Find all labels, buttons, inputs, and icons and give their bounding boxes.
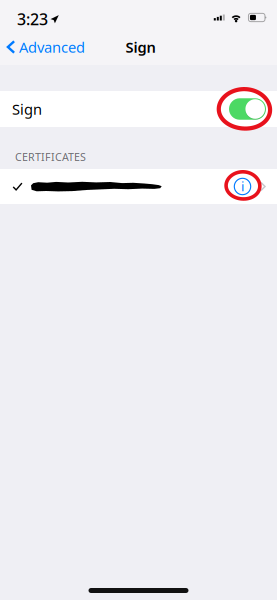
button[interactable]: More Info: [230, 169, 270, 204]
staticText: i: [241, 177, 244, 195]
staticText: 3:23: [17, 8, 48, 30]
staticText: Advanced: [19, 37, 85, 57]
button[interactable]: Advanced: [0, 34, 91, 60]
button[interactable]: Certificate, selected: [0, 169, 277, 204]
staticText: Sign: [125, 37, 155, 57]
button[interactable]: Sign, on: [229, 98, 266, 120]
staticText: Sign: [12, 99, 42, 119]
staticText: CERTIFICATES: [15, 150, 86, 164]
